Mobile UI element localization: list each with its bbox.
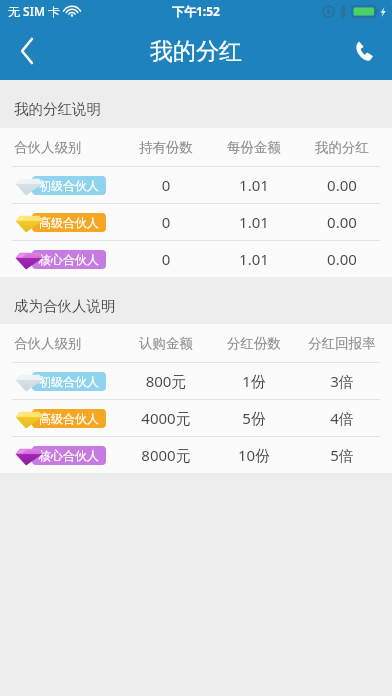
staticText: 分红回报率: [298, 335, 386, 352]
staticText: 0: [122, 249, 210, 269]
staticText: 持有份数: [122, 139, 210, 156]
staticText: 我的分红: [298, 139, 386, 156]
staticText: 800元: [122, 371, 210, 391]
staticText: 8000元: [122, 445, 210, 465]
staticText: 初级合伙人: [39, 374, 99, 389]
staticText: 1.01: [210, 249, 298, 269]
button[interactable]: Call: [336, 22, 392, 80]
staticText: 我的分红说明: [14, 100, 101, 118]
staticText: 1.01: [210, 175, 298, 195]
staticText: 0.00: [298, 212, 386, 232]
staticText: 5份: [210, 408, 298, 428]
staticText: 无 SIM 卡: [8, 3, 61, 19]
staticText: 4倍: [298, 408, 386, 428]
staticText: 认购金额: [122, 335, 210, 352]
staticText: 我的分红: [150, 37, 242, 66]
staticText: 成为合伙人说明: [14, 297, 116, 315]
staticText: 高级合伙人: [39, 215, 99, 230]
button[interactable]: 高级合伙人: [0, 400, 392, 437]
staticText: 5倍: [298, 445, 386, 465]
staticText: 合伙人级别: [14, 139, 122, 156]
staticText: 0.00: [298, 249, 386, 269]
staticText: 合伙人级别: [14, 335, 122, 352]
staticText: 1份: [210, 371, 298, 391]
button[interactable]: 高级合伙人: [0, 204, 392, 241]
staticText: 10份: [210, 445, 298, 465]
staticText: 每份金额: [210, 139, 298, 156]
button[interactable]: 初级合伙人: [0, 167, 392, 204]
button[interactable]: 核心合伙人: [0, 241, 392, 277]
staticText: 0.00: [298, 175, 386, 195]
staticText: 1.01: [210, 212, 298, 232]
staticText: 高级合伙人: [39, 411, 99, 426]
button[interactable]: Back: [0, 22, 54, 80]
button[interactable]: 初级合伙人: [0, 363, 392, 400]
staticText: 分红份数: [210, 335, 298, 352]
staticText: 0: [122, 212, 210, 232]
staticText: 0: [122, 175, 210, 195]
button[interactable]: 核心合伙人: [0, 437, 392, 473]
staticText: 核心合伙人: [39, 252, 99, 267]
staticText: 4000元: [122, 408, 210, 428]
staticText: 下午1:52: [172, 3, 220, 19]
staticText: 核心合伙人: [39, 448, 99, 463]
staticText: 3倍: [298, 371, 386, 391]
staticText: 初级合伙人: [39, 178, 99, 193]
